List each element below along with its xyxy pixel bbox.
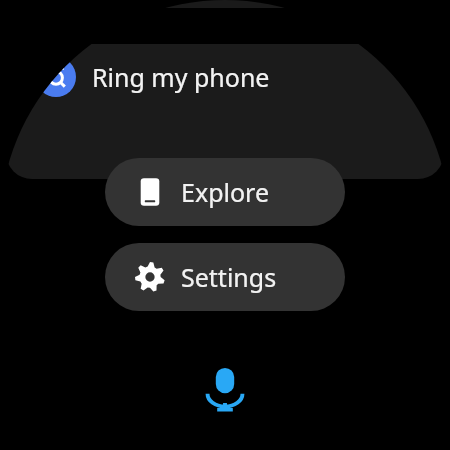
button[interactable]: Ring my phone bbox=[6, 44, 444, 179]
button[interactable]: Settings bbox=[105, 243, 345, 311]
staticText: Settings bbox=[181, 260, 277, 294]
staticText: Explore bbox=[181, 175, 270, 209]
button[interactable]: Voice search bbox=[197, 362, 253, 418]
staticText: Ring my phone bbox=[92, 60, 270, 94]
button[interactable]: Explore bbox=[105, 158, 345, 226]
